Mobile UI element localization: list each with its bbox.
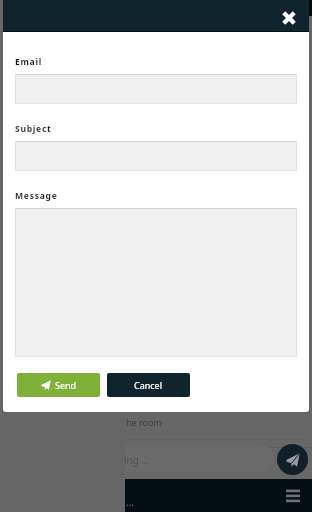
- staticText: Cancel: [134, 379, 163, 391]
- button[interactable]: Menu: [280, 482, 306, 508]
- button[interactable]: Cancel: [107, 373, 190, 397]
- button[interactable]: Send message: [277, 444, 308, 475]
- button[interactable]: [15, 141, 297, 171]
- staticText: Email: [15, 56, 42, 68]
- staticText: Message: [15, 190, 58, 202]
- staticText: he room: [126, 416, 162, 428]
- staticText: ...: [126, 495, 135, 509]
- button[interactable]: [15, 74, 297, 104]
- button[interactable]: Send: [17, 373, 100, 397]
- staticText: Send: [55, 379, 77, 391]
- staticText: ing ...: [124, 453, 150, 467]
- button[interactable]: Close: [276, 4, 302, 30]
- staticText: Subject: [15, 123, 52, 135]
